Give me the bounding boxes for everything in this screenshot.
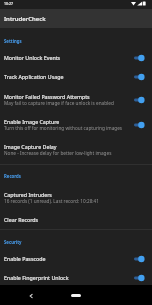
staticText: Monitor Unlock Events xyxy=(4,54,61,61)
button[interactable]: Toggle xyxy=(134,96,145,104)
staticText: Records xyxy=(4,173,21,179)
staticText: Captured Intruders xyxy=(4,191,52,198)
button[interactable]: Toggle xyxy=(134,73,145,81)
button[interactable]: Monitor Unlock Events xyxy=(0,48,152,67)
button[interactable]: Clear Records xyxy=(0,210,152,229)
button[interactable]: Track Application Usage xyxy=(0,67,152,86)
staticText: Enable Image Capture xyxy=(4,118,60,125)
button[interactable]: Monitor Failed Password Attempts xyxy=(0,87,152,112)
button[interactable]: Toggle xyxy=(134,255,145,263)
staticText: May fail to capture image if face unlock… xyxy=(4,100,114,106)
button[interactable]: Toggle xyxy=(134,121,145,129)
staticText: Clear Records xyxy=(4,216,39,223)
button[interactable]: Toggle xyxy=(134,274,145,282)
button[interactable]: Enable Fingerprint Unlock xyxy=(0,268,152,287)
button[interactable]: Enable Image Capture xyxy=(0,112,152,137)
staticText: Monitor Failed Password Attempts xyxy=(4,93,90,100)
button[interactable]: Image Capture Delay xyxy=(0,137,152,162)
staticText: Track Application Usage xyxy=(4,73,64,80)
staticText: Turn this off for monitoring without cap… xyxy=(4,125,123,131)
staticText: IntruderCheck xyxy=(4,15,46,23)
button[interactable]: Back xyxy=(27,292,34,299)
staticText: Enable Passcode xyxy=(4,255,46,262)
staticText: 16 records (1 unread). Last record: 10:2… xyxy=(4,198,99,204)
staticText: 10:27 xyxy=(4,1,13,6)
staticText: None - Increase delay for better low-lig… xyxy=(4,150,112,156)
staticText: Enable Fingerprint Unlock xyxy=(4,274,69,281)
staticText: Security xyxy=(4,239,22,245)
staticText: Image Capture Delay xyxy=(4,143,57,150)
button[interactable]: Captured Intruders xyxy=(0,185,152,210)
button[interactable]: Enable Passcode xyxy=(0,249,152,268)
button[interactable]: Home xyxy=(71,294,81,297)
staticText: Settings xyxy=(4,38,22,44)
button[interactable]: Toggle xyxy=(134,54,145,62)
